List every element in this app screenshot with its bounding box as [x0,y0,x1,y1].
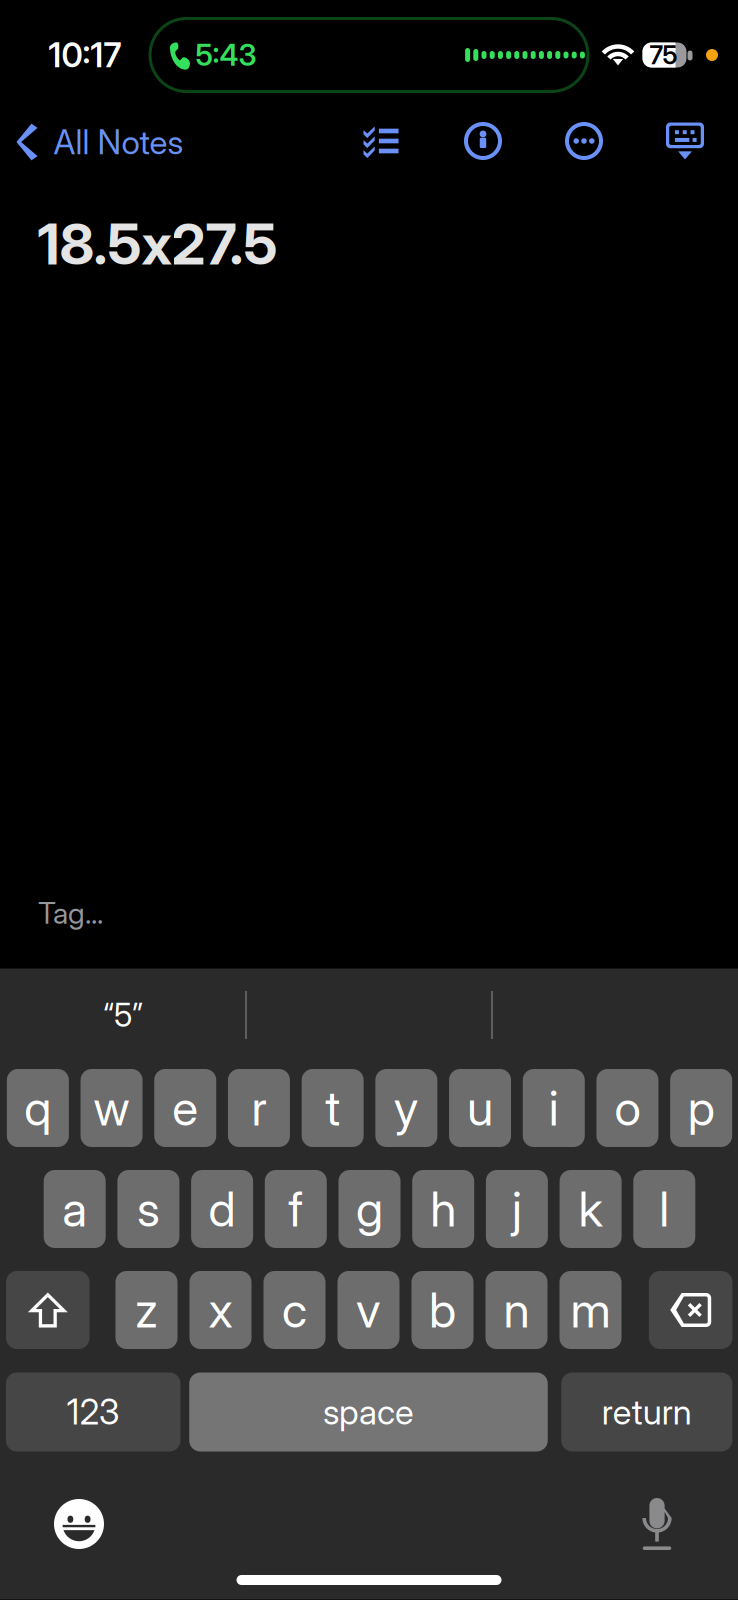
button[interactable]: w [81,1069,143,1147]
staticText: i [549,1079,559,1137]
staticText: l [659,1180,669,1238]
button[interactable]: p [670,1069,732,1147]
button[interactable]: i [523,1069,585,1147]
button[interactable]: s [117,1170,179,1248]
button[interactable]: q [7,1069,69,1147]
staticText: x [208,1281,232,1339]
staticText: w [94,1079,130,1137]
button[interactable]: u [449,1069,511,1147]
staticText: u [467,1079,493,1137]
staticText: s [137,1180,160,1238]
staticText: Tag... [38,895,103,931]
button[interactable]: d [191,1170,253,1248]
button[interactable]: z [115,1271,177,1349]
staticText: o [614,1079,640,1137]
staticText: space [323,1391,414,1433]
staticText: n [503,1281,529,1339]
staticText: 5:43 [195,37,256,73]
button[interactable]: t [302,1069,364,1147]
button[interactable]: v [337,1271,399,1349]
button[interactable]: o [596,1069,658,1147]
staticText: 18.5x27.5 [37,211,277,277]
staticText: e [172,1079,198,1137]
staticText: z [135,1281,158,1339]
staticText: j [512,1180,522,1238]
button[interactable]: g [338,1170,400,1248]
staticText: a [62,1180,87,1238]
staticText: “5” [103,996,143,1034]
button[interactable]: Checklist [352,112,410,170]
button[interactable]: a [44,1170,106,1248]
button[interactable]: y [375,1069,437,1147]
button[interactable]: e [154,1069,216,1147]
staticText: p [688,1079,715,1137]
staticText: c [282,1281,307,1339]
button[interactable]: “5” [0,981,246,1049]
staticText: v [356,1281,381,1339]
button[interactable]: h [412,1170,474,1248]
button[interactable]: Dictation [615,1482,699,1566]
staticText: g [356,1180,383,1238]
staticText: h [430,1180,456,1238]
staticText: All Notes [53,122,183,162]
staticText: 10:17 [48,35,121,75]
button[interactable]: Shift [6,1271,89,1349]
staticText: k [579,1180,603,1238]
staticText: q [24,1079,51,1137]
staticText: f [288,1180,303,1238]
button[interactable]: More [555,112,613,170]
staticText: d [209,1180,236,1238]
button[interactable]: j [486,1170,548,1248]
button[interactable]: r [228,1069,290,1147]
button[interactable]: m [559,1271,621,1349]
staticText: r [251,1079,266,1137]
staticText: 123 [67,1391,120,1433]
button[interactable]: n [485,1271,547,1349]
button[interactable]: 123 [6,1372,180,1451]
staticText: m [570,1281,610,1339]
staticText: b [429,1281,456,1339]
button[interactable]: Tag... [38,895,103,931]
button[interactable]: return [561,1372,732,1451]
staticText: return [602,1391,692,1433]
button[interactable]: b [411,1271,473,1349]
staticText: y [394,1079,419,1137]
button[interactable]: space [189,1372,548,1451]
button[interactable]: c [263,1271,325,1349]
button[interactable]: f [265,1170,327,1248]
staticText: 75 [649,40,677,70]
staticText: t [325,1079,340,1137]
button[interactable]: x [189,1271,251,1349]
button[interactable]: Hide Keyboard [656,112,714,170]
button[interactable]: k [560,1170,622,1248]
button[interactable]: l [633,1170,695,1248]
button[interactable]: Emoji [37,1482,121,1566]
button[interactable]: Delete [649,1271,732,1349]
button[interactable]: Info [454,112,512,170]
button[interactable]: All Notes [16,114,183,170]
